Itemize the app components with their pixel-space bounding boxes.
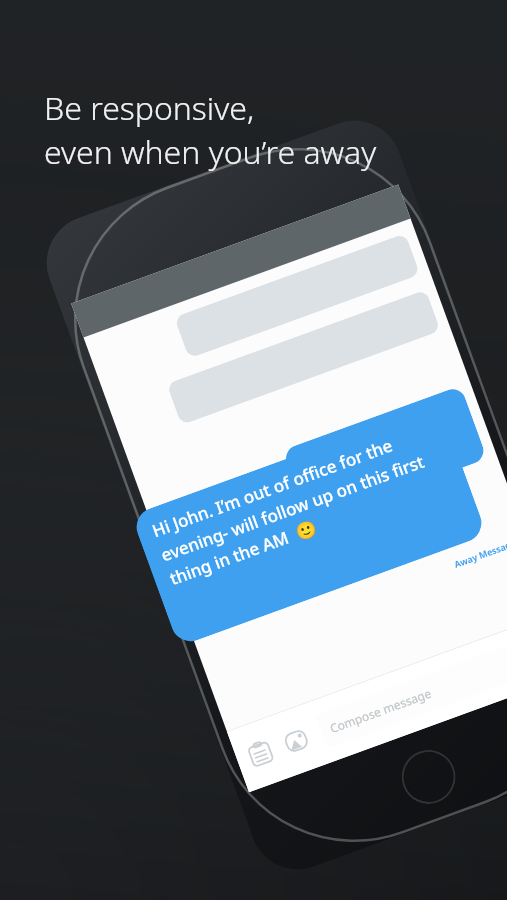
button[interactable] [166,289,441,425]
staticText: Hi John. I’m out of office for the eveni… [149,419,454,590]
staticText: Be responsive, [44,86,255,130]
button[interactable]: Attach image [278,723,314,759]
staticText: even when you’re away [44,130,377,174]
staticText: Away Message [452,536,507,570]
button[interactable] [174,233,420,359]
staticText: Compose message [327,685,433,736]
button[interactable] [282,385,487,524]
button[interactable]: Away Message [71,185,507,792]
button[interactable]: Notes [243,736,279,772]
button[interactable]: Hi John. I’m out of office for the eveni… [131,403,487,647]
button[interactable]: Compose message [315,630,507,749]
button[interactable]: Home [394,742,463,811]
